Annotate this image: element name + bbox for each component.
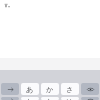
button[interactable]: か xyxy=(41,83,59,95)
button[interactable]: な xyxy=(41,97,59,100)
button[interactable]: た xyxy=(21,97,39,100)
button[interactable]: Backspace xyxy=(81,83,99,95)
button[interactable]: Back xyxy=(4,3,10,9)
staticText: か xyxy=(46,85,54,94)
button[interactable]: あ xyxy=(21,83,39,95)
button[interactable]: Tab xyxy=(1,97,19,100)
staticText: さ xyxy=(66,85,74,94)
staticText: な xyxy=(46,97,54,100)
button[interactable]: さ xyxy=(61,83,79,95)
staticText: は xyxy=(66,97,74,100)
button[interactable]: Tab xyxy=(1,83,19,95)
button[interactable]: は xyxy=(61,97,79,100)
staticText: た xyxy=(26,97,34,100)
staticText: あ xyxy=(26,85,34,94)
button[interactable]: Backspace xyxy=(81,97,99,100)
